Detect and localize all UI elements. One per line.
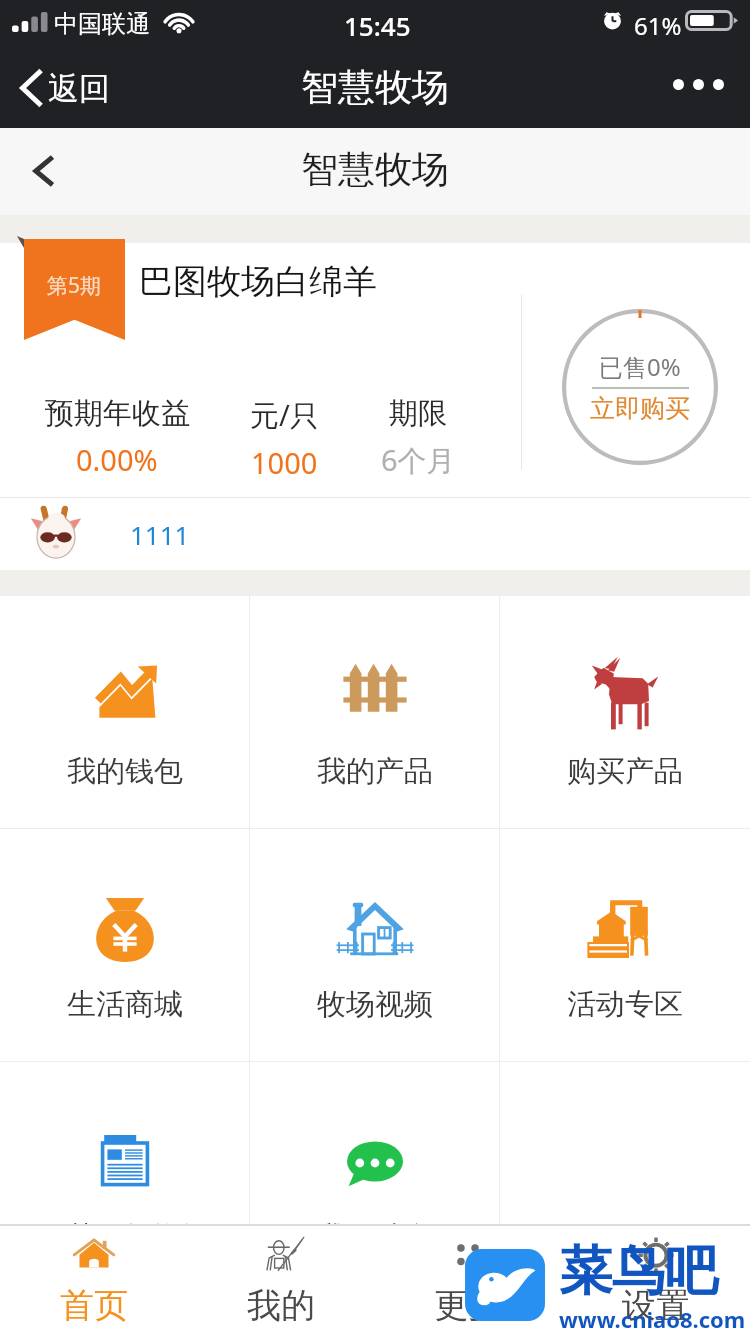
button[interactable]: 我的 (187, 1226, 374, 1334)
button[interactable]: More options (663, 54, 733, 114)
staticText: 生活商城 (67, 986, 183, 1023)
button[interactable]: 设置 (562, 1226, 750, 1334)
button[interactable]: Back (18, 146, 68, 196)
staticText: 返回 (48, 69, 110, 108)
button[interactable]: 我的产品 (250, 596, 500, 828)
staticText: 智慧牧场 (301, 146, 449, 193)
staticText: 巴图牧场白绵羊 (139, 260, 377, 303)
button[interactable]: 购买产品 (500, 596, 750, 828)
staticText: 期限 (389, 395, 447, 432)
staticText: 61% (634, 9, 682, 42)
staticText: 牧场视频 (317, 986, 433, 1023)
button[interactable]: 生活商城 (0, 829, 250, 1061)
button[interactable]: 立即购买 (562, 309, 718, 465)
staticText: 菜鸟吧 (559, 1238, 718, 1305)
staticText: 立即购买 (590, 393, 690, 424)
button[interactable]: 我的消息 (250, 1062, 500, 1224)
staticText: 0.00% (76, 440, 158, 479)
staticText: 智慧牧场 (301, 64, 449, 111)
staticText: 6个月 (381, 440, 456, 480)
staticText: 预期年收益 (45, 395, 190, 432)
staticText: 中国联通 (54, 9, 150, 39)
staticText: 1111 (130, 517, 190, 552)
staticText: 活动专区 (567, 986, 683, 1023)
button[interactable]: 首页 (0, 1226, 187, 1334)
staticText: 1000 (251, 443, 318, 482)
button[interactable]: 我的钱包 (0, 596, 250, 828)
staticText: 首页 (60, 1284, 128, 1327)
staticText: 更多 (434, 1284, 502, 1327)
button[interactable]: 更多 (374, 1226, 562, 1334)
button[interactable]: 活动专区 (500, 829, 750, 1061)
button[interactable]: 返回 (20, 48, 140, 128)
staticText: 我的产品 (317, 753, 433, 790)
button[interactable]: 1111 (0, 498, 750, 570)
staticText: 我的钱包 (67, 753, 183, 790)
button[interactable]: 智慧牧场资讯 (0, 1062, 250, 1224)
staticText: 元/只 (250, 395, 319, 435)
staticText: 已售0% (599, 350, 681, 383)
staticText: 15:45 (344, 8, 411, 43)
button[interactable]: 牧场视频 (250, 829, 500, 1061)
staticText: 第5期 (47, 271, 102, 300)
staticText: 购买产品 (567, 753, 683, 790)
staticText: 智慧牧场资讯 (38, 1219, 212, 1224)
staticText: 设置 (622, 1284, 690, 1327)
staticText: www.cniao8.com (559, 1304, 746, 1334)
staticText: 我的消息 (317, 1219, 433, 1224)
staticText: 我的 (247, 1284, 315, 1327)
